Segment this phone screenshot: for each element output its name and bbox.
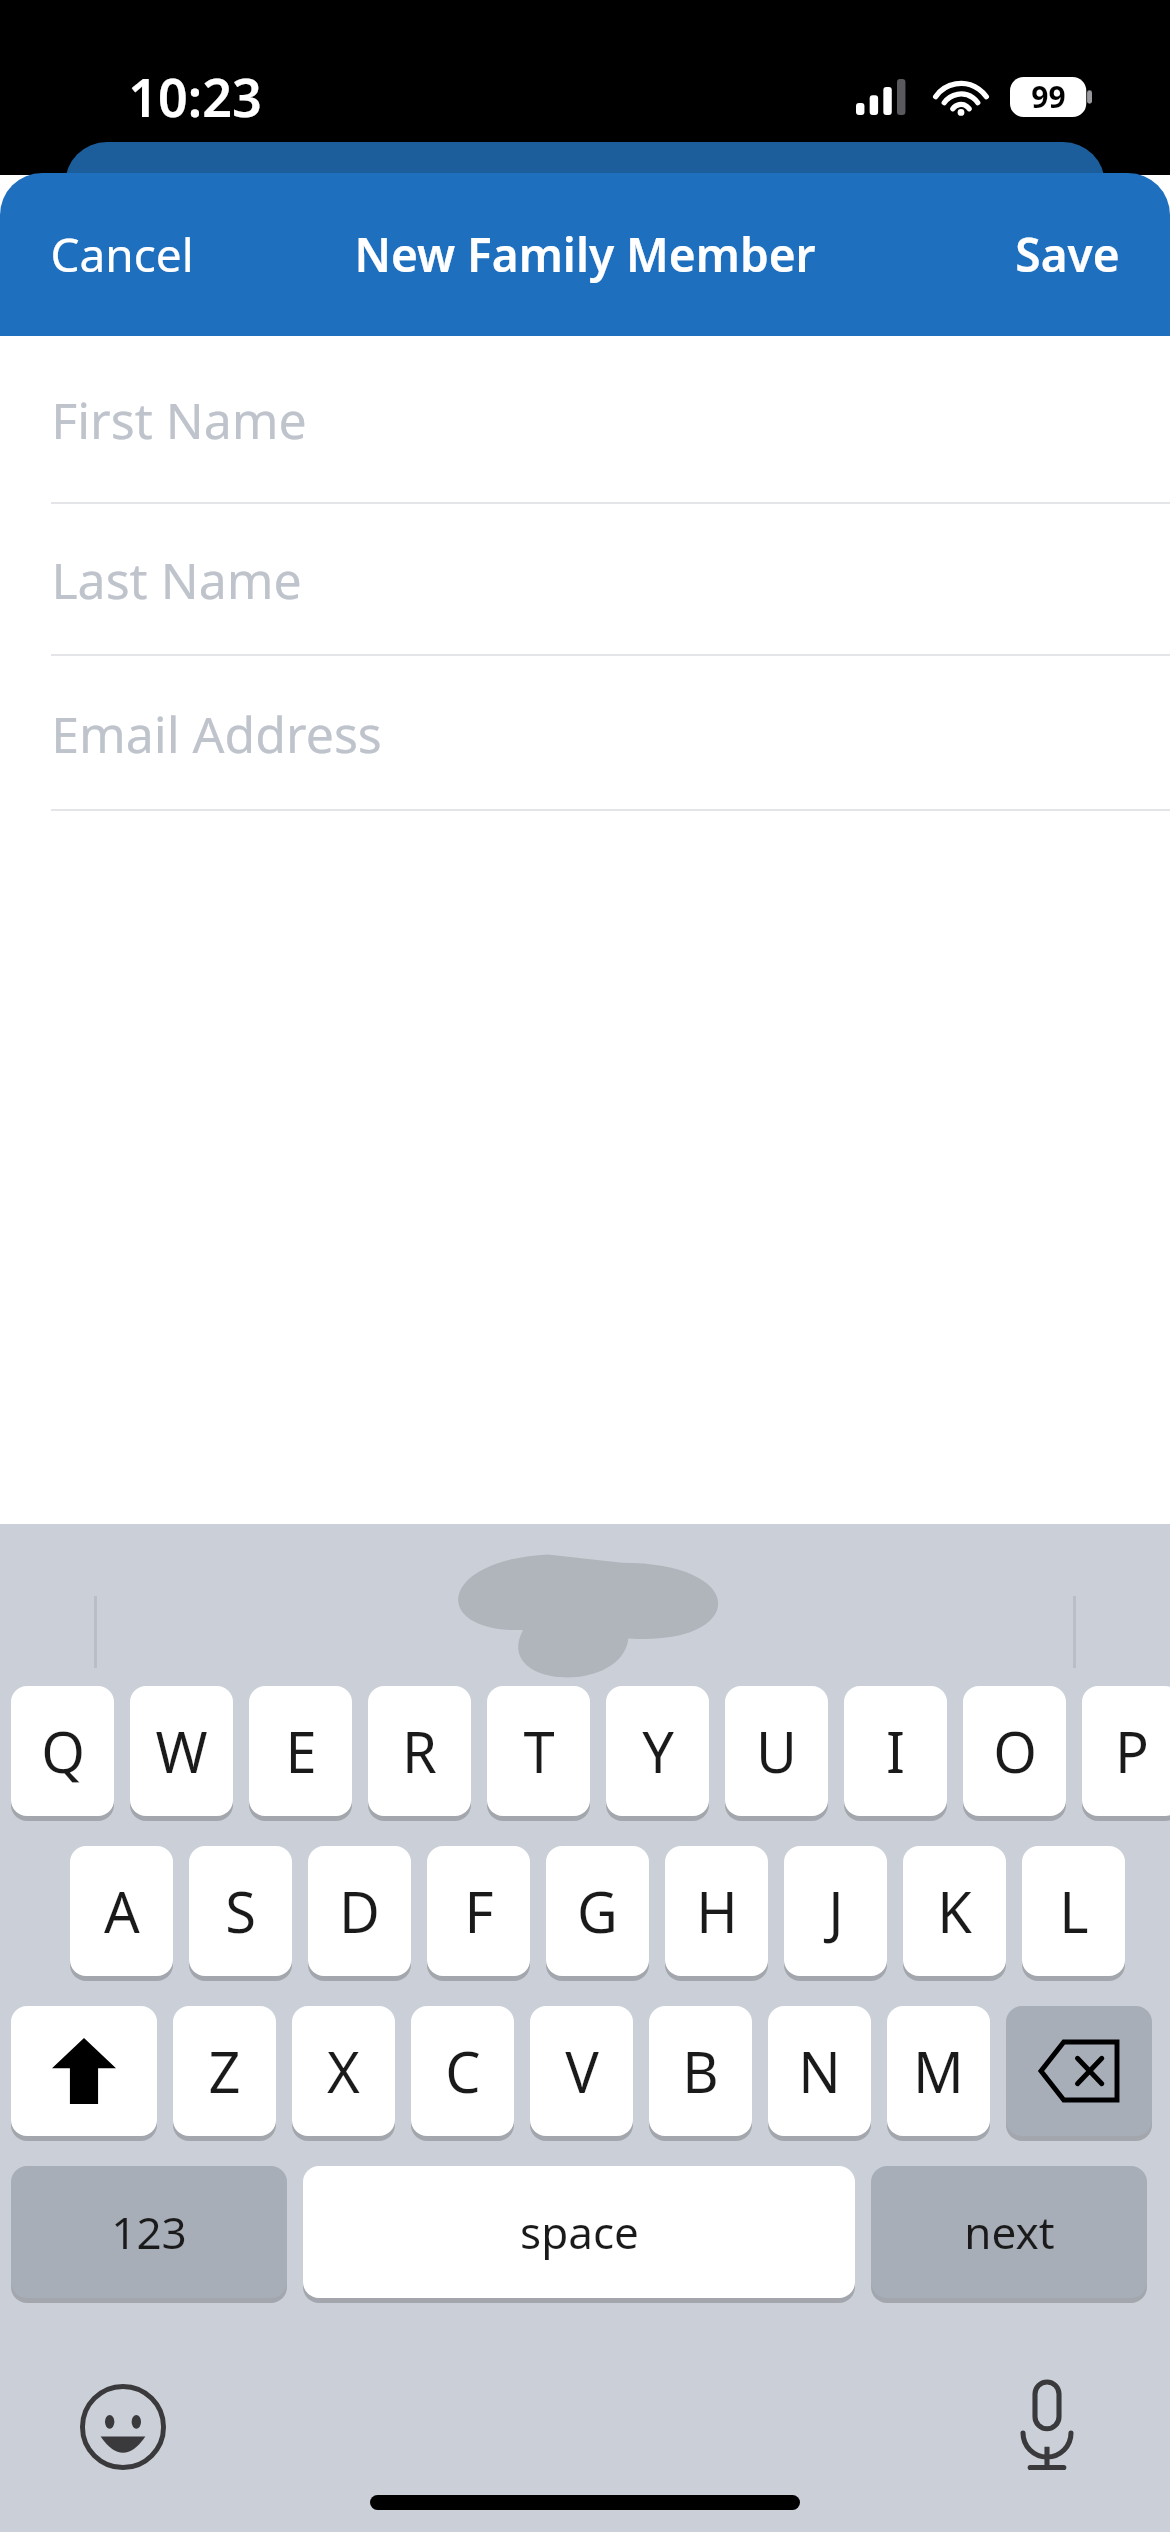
staticText: space <box>520 2202 639 2262</box>
staticText: New Family Member <box>354 223 816 286</box>
button[interactable]: T <box>487 1686 590 1816</box>
button[interactable]: Z <box>173 2006 276 2136</box>
staticText: L <box>1059 1873 1089 1949</box>
staticText: N <box>798 2033 841 2109</box>
staticText: V <box>565 2033 599 2109</box>
button[interactable]: N <box>768 2006 871 2136</box>
button[interactable]: X <box>292 2006 395 2136</box>
button[interactable]: Backspace <box>1006 2006 1152 2136</box>
staticText: I <box>886 1713 905 1789</box>
staticText: A <box>104 1873 140 1949</box>
button[interactable]: K <box>903 1846 1006 1976</box>
staticText: 123 <box>111 2202 187 2262</box>
button[interactable]: Email Address <box>0 656 1170 811</box>
button[interactable]: Q <box>11 1686 114 1816</box>
button[interactable]: R <box>368 1686 471 1816</box>
button[interactable]: F <box>427 1846 530 1976</box>
staticText: Y <box>642 1713 674 1789</box>
staticText: R <box>402 1713 437 1789</box>
button[interactable]: D <box>308 1846 411 1976</box>
button[interactable]: J <box>784 1846 887 1976</box>
button[interactable]: V <box>530 2006 633 2136</box>
button[interactable]: next <box>871 2166 1147 2298</box>
staticText: Z <box>208 2033 241 2109</box>
button[interactable]: 123 <box>11 2166 287 2298</box>
button[interactable]: H <box>665 1846 768 1976</box>
button[interactable]: Save <box>999 209 1136 300</box>
button[interactable]: Dictation <box>992 2372 1102 2482</box>
staticText: 99 <box>1031 76 1066 117</box>
staticText: Email Address <box>51 700 382 768</box>
button[interactable]: Shift <box>11 2006 157 2136</box>
staticText: Cancel <box>50 223 194 286</box>
staticText: T <box>523 1713 555 1789</box>
button[interactable]: W <box>130 1686 233 1816</box>
button[interactable]: B <box>649 2006 752 2136</box>
staticText: M <box>913 2033 964 2109</box>
button[interactable]: G <box>546 1846 649 1976</box>
staticText: D <box>339 1873 380 1949</box>
button[interactable]: U <box>725 1686 828 1816</box>
staticText: First Name <box>51 386 307 454</box>
button[interactable]: Y <box>606 1686 709 1816</box>
button[interactable]: I <box>844 1686 947 1816</box>
staticText: S <box>225 1873 256 1949</box>
button[interactable]: First Name <box>0 336 1170 504</box>
button[interactable]: M <box>887 2006 990 2136</box>
staticText: C <box>445 2033 481 2109</box>
staticText: Save <box>1015 223 1120 286</box>
button[interactable]: Cancel <box>34 209 210 300</box>
staticText: X <box>327 2033 360 2109</box>
staticText: H <box>696 1873 738 1949</box>
staticText: G <box>577 1873 618 1949</box>
staticText: Last Name <box>51 546 302 614</box>
button[interactable]: Emoji keyboard <box>68 2372 178 2482</box>
button[interactable]: S <box>189 1846 292 1976</box>
staticText: W <box>155 1713 208 1789</box>
button[interactable]: P <box>1082 1686 1170 1816</box>
staticText: K <box>937 1873 972 1949</box>
button[interactable]: A <box>70 1846 173 1976</box>
staticText: P <box>1115 1713 1149 1789</box>
button[interactable]: L <box>1022 1846 1125 1976</box>
button[interactable]: E <box>249 1686 352 1816</box>
button[interactable]: O <box>963 1686 1066 1816</box>
staticText: J <box>828 1873 844 1949</box>
staticText: F <box>464 1873 494 1949</box>
staticText: E <box>285 1713 317 1789</box>
staticText: O <box>993 1713 1037 1789</box>
staticText: B <box>682 2033 719 2109</box>
button[interactable]: C <box>411 2006 514 2136</box>
button[interactable]: Last Name <box>0 504 1170 656</box>
staticText: 10:23 <box>128 61 262 132</box>
staticText: Q <box>41 1713 85 1789</box>
button[interactable]: space <box>303 2166 855 2298</box>
staticText: next <box>964 2202 1055 2262</box>
staticText: U <box>756 1713 797 1789</box>
